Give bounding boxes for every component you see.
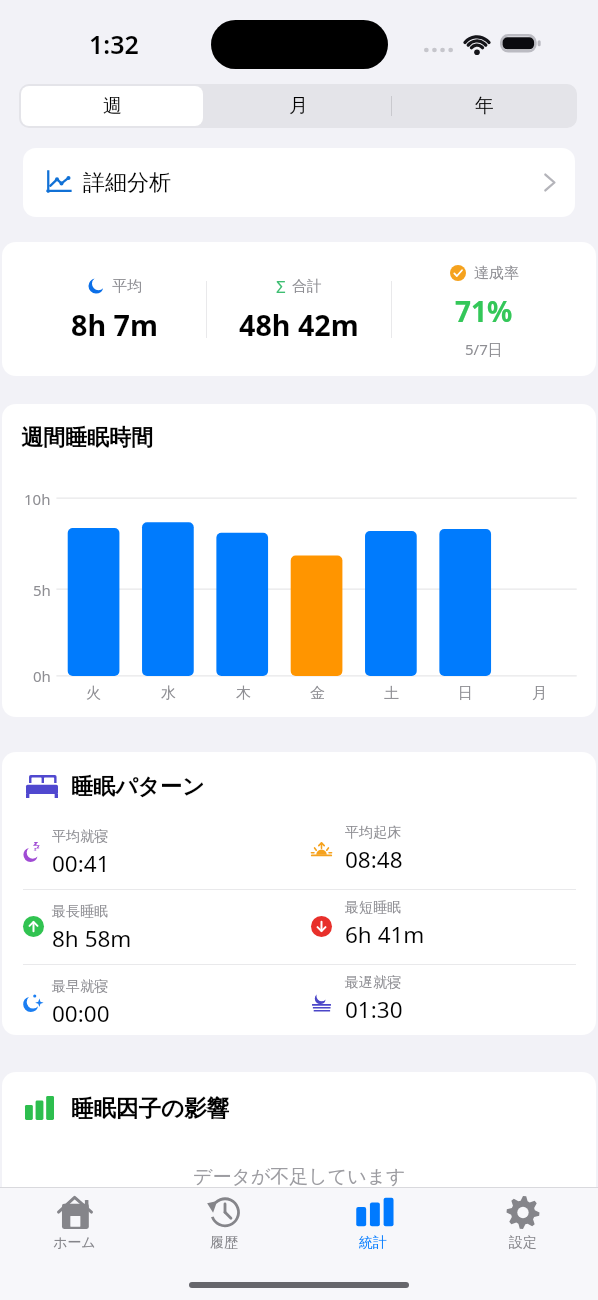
staticText: 10h (24, 489, 51, 509)
button[interactable]: 統計 (298, 1188, 448, 1258)
staticText: 6h 41m (345, 919, 425, 950)
staticText: 週間睡眠時間 (21, 424, 153, 452)
staticText: 8h 58m (52, 923, 132, 954)
staticText: 合計 (292, 277, 322, 296)
staticText: 詳細分析 (83, 169, 171, 197)
staticText: 月 (532, 684, 547, 703)
button[interactable]: 月 (205, 84, 391, 128)
staticText: 睡眠パターン (71, 773, 205, 801)
staticText: 土 (384, 684, 399, 703)
staticText: 5h (33, 580, 51, 600)
staticText: ホーム (53, 1234, 96, 1252)
staticText: 平均 (112, 277, 142, 296)
staticText: 0h (33, 666, 51, 686)
staticText: 日 (458, 684, 473, 703)
button[interactable]: 詳細分析 (23, 148, 575, 217)
staticText: 最遅就寝 (345, 974, 401, 992)
staticText: データが不足しています (193, 1165, 406, 1189)
staticText: 最早就寝 (52, 978, 108, 996)
staticText: 達成率 (474, 264, 519, 283)
other: 詳細分析を開く (543, 172, 556, 193)
button[interactable]: 年 (391, 84, 577, 128)
staticText: 履歴 (210, 1234, 238, 1252)
staticText: 睡眠因子の影響 (71, 1094, 230, 1122)
staticText: 71% (455, 292, 513, 330)
staticText: 年 (475, 94, 494, 118)
staticText: 統計 (359, 1234, 387, 1252)
staticText: 設定 (509, 1234, 537, 1252)
staticText: 8h 7m (71, 305, 158, 344)
button[interactable]: ホーム (0, 1188, 149, 1258)
staticText: 00:41 (52, 848, 110, 879)
staticText: 00:00 (52, 998, 110, 1029)
staticText: 平均就寝 (52, 828, 108, 846)
button[interactable]: 週 (19, 84, 205, 128)
staticText: Σ (276, 275, 286, 297)
staticText: 01:30 (345, 994, 403, 1025)
staticText: 1:32 (89, 27, 139, 61)
staticText: 水 (161, 684, 176, 703)
staticText: 5/7日 (465, 339, 503, 359)
staticText: 48h 42m (239, 305, 359, 344)
staticText: 最長睡眠 (52, 903, 108, 921)
staticText: 火 (86, 684, 101, 703)
button[interactable]: 設定 (448, 1188, 598, 1258)
staticText: 木 (236, 684, 251, 703)
staticText: 最短睡眠 (345, 899, 401, 917)
staticText: 週 (103, 94, 122, 118)
staticText: 月 (289, 94, 308, 118)
staticText: 平均起床 (345, 824, 401, 842)
staticText: 08:48 (345, 844, 403, 875)
button[interactable]: 履歴 (149, 1188, 298, 1258)
staticText: 金 (310, 684, 325, 703)
